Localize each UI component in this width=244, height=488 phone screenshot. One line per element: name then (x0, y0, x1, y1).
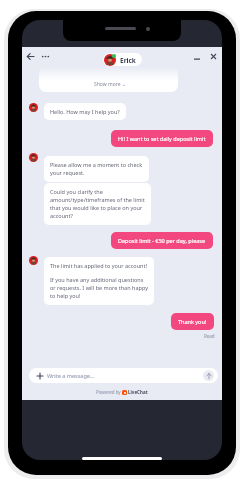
staticText: Hi! I want to set daily deposit limit (118, 135, 206, 142)
button[interactable]: Could you clarify the amount/type/timefr… (44, 183, 151, 225)
button[interactable]: Show more ⌄ (39, 67, 178, 92)
button[interactable]: Add attachment (32, 368, 47, 383)
staticText: Thank you! (178, 318, 207, 325)
button[interactable]: Thank you! (171, 313, 214, 330)
button[interactable]: The limit has applied to your account! (44, 257, 154, 305)
staticText: If you have any additional questions or … (50, 276, 148, 300)
button[interactable]: Deposit limit - €50 per day, please (111, 232, 213, 249)
button[interactable]: More options (39, 50, 52, 63)
staticText: Read (204, 333, 215, 339)
staticText: LiveChat (128, 389, 148, 395)
button[interactable]: Erick (103, 53, 142, 66)
staticText: Could you clarify the amount/type/timefr… (50, 188, 145, 220)
button[interactable]: Send (203, 370, 214, 381)
button[interactable]: Back (24, 50, 37, 63)
button[interactable]: Close (207, 50, 220, 63)
button[interactable]: Please allow me a moment to check your r… (44, 156, 149, 182)
staticText: The limit has applied to your account! (50, 262, 147, 269)
button[interactable]: Minimize (190, 50, 203, 63)
staticText: Deposit limit - €50 per day, please (118, 237, 206, 244)
button[interactable]: Hello. How may I help you? (44, 103, 126, 120)
staticText: Hello. How may I help you? (50, 108, 120, 115)
staticText: Write a message... (47, 372, 95, 379)
staticText: Powered by (96, 389, 122, 395)
staticText: Erick (120, 56, 136, 65)
staticText: Show more ⌄ (94, 81, 126, 88)
button[interactable]: Hi! I want to set daily deposit limit (111, 130, 213, 147)
button[interactable]: Add attachment (29, 368, 218, 383)
staticText: Please allow me a moment to check your r… (50, 161, 143, 177)
